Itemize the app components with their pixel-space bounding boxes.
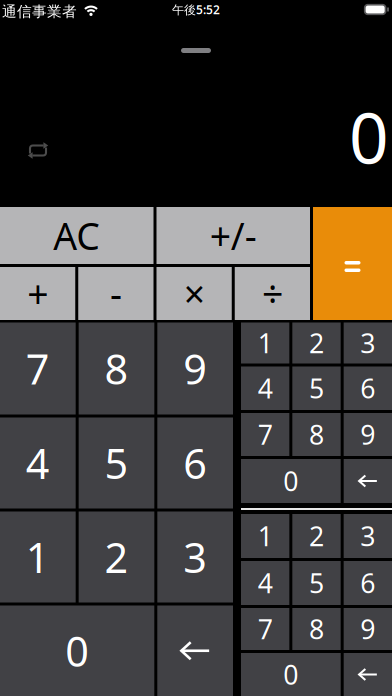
staticText: 3	[183, 530, 207, 584]
staticText: 午後5:52	[172, 1, 220, 17]
staticText: -	[110, 269, 122, 318]
button[interactable]: 0	[0, 605, 154, 696]
staticText: 5	[309, 565, 324, 601]
button[interactable]: +	[0, 267, 75, 320]
button[interactable]: 7	[241, 608, 289, 650]
staticText: 通信事業者	[2, 2, 77, 20]
button[interactable]: Delete	[157, 605, 233, 696]
button[interactable]: 3	[344, 514, 392, 558]
staticText: 0	[349, 91, 389, 183]
button[interactable]: 2	[292, 322, 341, 363]
staticText: +/-	[210, 211, 257, 260]
button[interactable]: 6	[344, 366, 392, 410]
staticText: 7	[26, 341, 50, 396]
staticText: 9	[183, 341, 207, 396]
button[interactable]: 入替	[27, 142, 49, 159]
staticText: 7	[258, 417, 273, 452]
staticText: 8	[309, 611, 324, 647]
staticText: AC	[53, 211, 100, 260]
button[interactable]: ×	[156, 267, 232, 320]
staticText: 0	[65, 623, 89, 678]
button[interactable]: 5	[79, 417, 154, 508]
staticText: 5	[104, 436, 128, 490]
staticText: ÷	[262, 269, 283, 318]
button[interactable]: 2	[79, 511, 154, 602]
staticText: ×	[184, 269, 205, 318]
button[interactable]: 4	[241, 561, 289, 605]
button[interactable]: 2	[292, 514, 341, 558]
button[interactable]: +/-	[156, 207, 310, 264]
button[interactable]: 3	[157, 511, 233, 602]
staticText: 0	[283, 657, 298, 692]
button[interactable]: 1	[241, 514, 289, 558]
button[interactable]: 5	[292, 366, 341, 410]
staticText: 2	[104, 530, 128, 584]
staticText: 8	[309, 417, 324, 452]
button[interactable]: 8	[292, 413, 341, 456]
button[interactable]: 6	[344, 561, 392, 605]
staticText: 5	[309, 370, 324, 406]
button[interactable]: 7	[241, 413, 289, 456]
staticText: 4	[26, 436, 50, 490]
staticText: 3	[360, 325, 375, 361]
staticText: 2	[309, 518, 324, 554]
staticText: 7	[258, 611, 273, 647]
staticText: +	[27, 269, 48, 318]
staticText: 1	[258, 518, 273, 554]
button[interactable]: 5	[292, 561, 341, 605]
button[interactable]: 3	[344, 322, 392, 363]
button[interactable]: Delete	[344, 459, 392, 503]
staticText: 6	[360, 565, 375, 601]
staticText: 4	[258, 565, 273, 601]
staticText: 8	[104, 341, 128, 396]
button[interactable]: 4	[241, 366, 289, 410]
button[interactable]: 0	[241, 653, 341, 696]
button[interactable]	[313, 207, 392, 320]
staticText: 9	[360, 417, 375, 452]
staticText: 6	[360, 370, 375, 406]
button[interactable]: 8	[79, 322, 154, 414]
staticText: 1	[258, 325, 273, 361]
staticText: 9	[360, 611, 375, 647]
staticText: 4	[258, 370, 273, 406]
button[interactable]: 9	[157, 322, 233, 414]
button[interactable]: 9	[344, 413, 392, 456]
button[interactable]: -	[78, 267, 153, 320]
staticText: 1	[26, 530, 50, 584]
staticText: 6	[183, 436, 207, 490]
staticText: 0	[283, 463, 298, 499]
button[interactable]: AC	[0, 207, 153, 264]
button[interactable]: 7	[0, 322, 76, 414]
button[interactable]: ÷	[235, 267, 310, 320]
button[interactable]: 4	[0, 417, 76, 508]
button[interactable]: Delete	[344, 653, 392, 696]
button[interactable]: 0	[241, 459, 341, 503]
staticText: 3	[360, 518, 375, 554]
button[interactable]: 6	[157, 417, 233, 508]
button[interactable]: 9	[344, 608, 392, 650]
button[interactable]: 1	[241, 322, 289, 363]
staticText: 2	[309, 325, 324, 361]
button[interactable]: 8	[292, 608, 341, 650]
button[interactable]: 1	[0, 511, 76, 602]
